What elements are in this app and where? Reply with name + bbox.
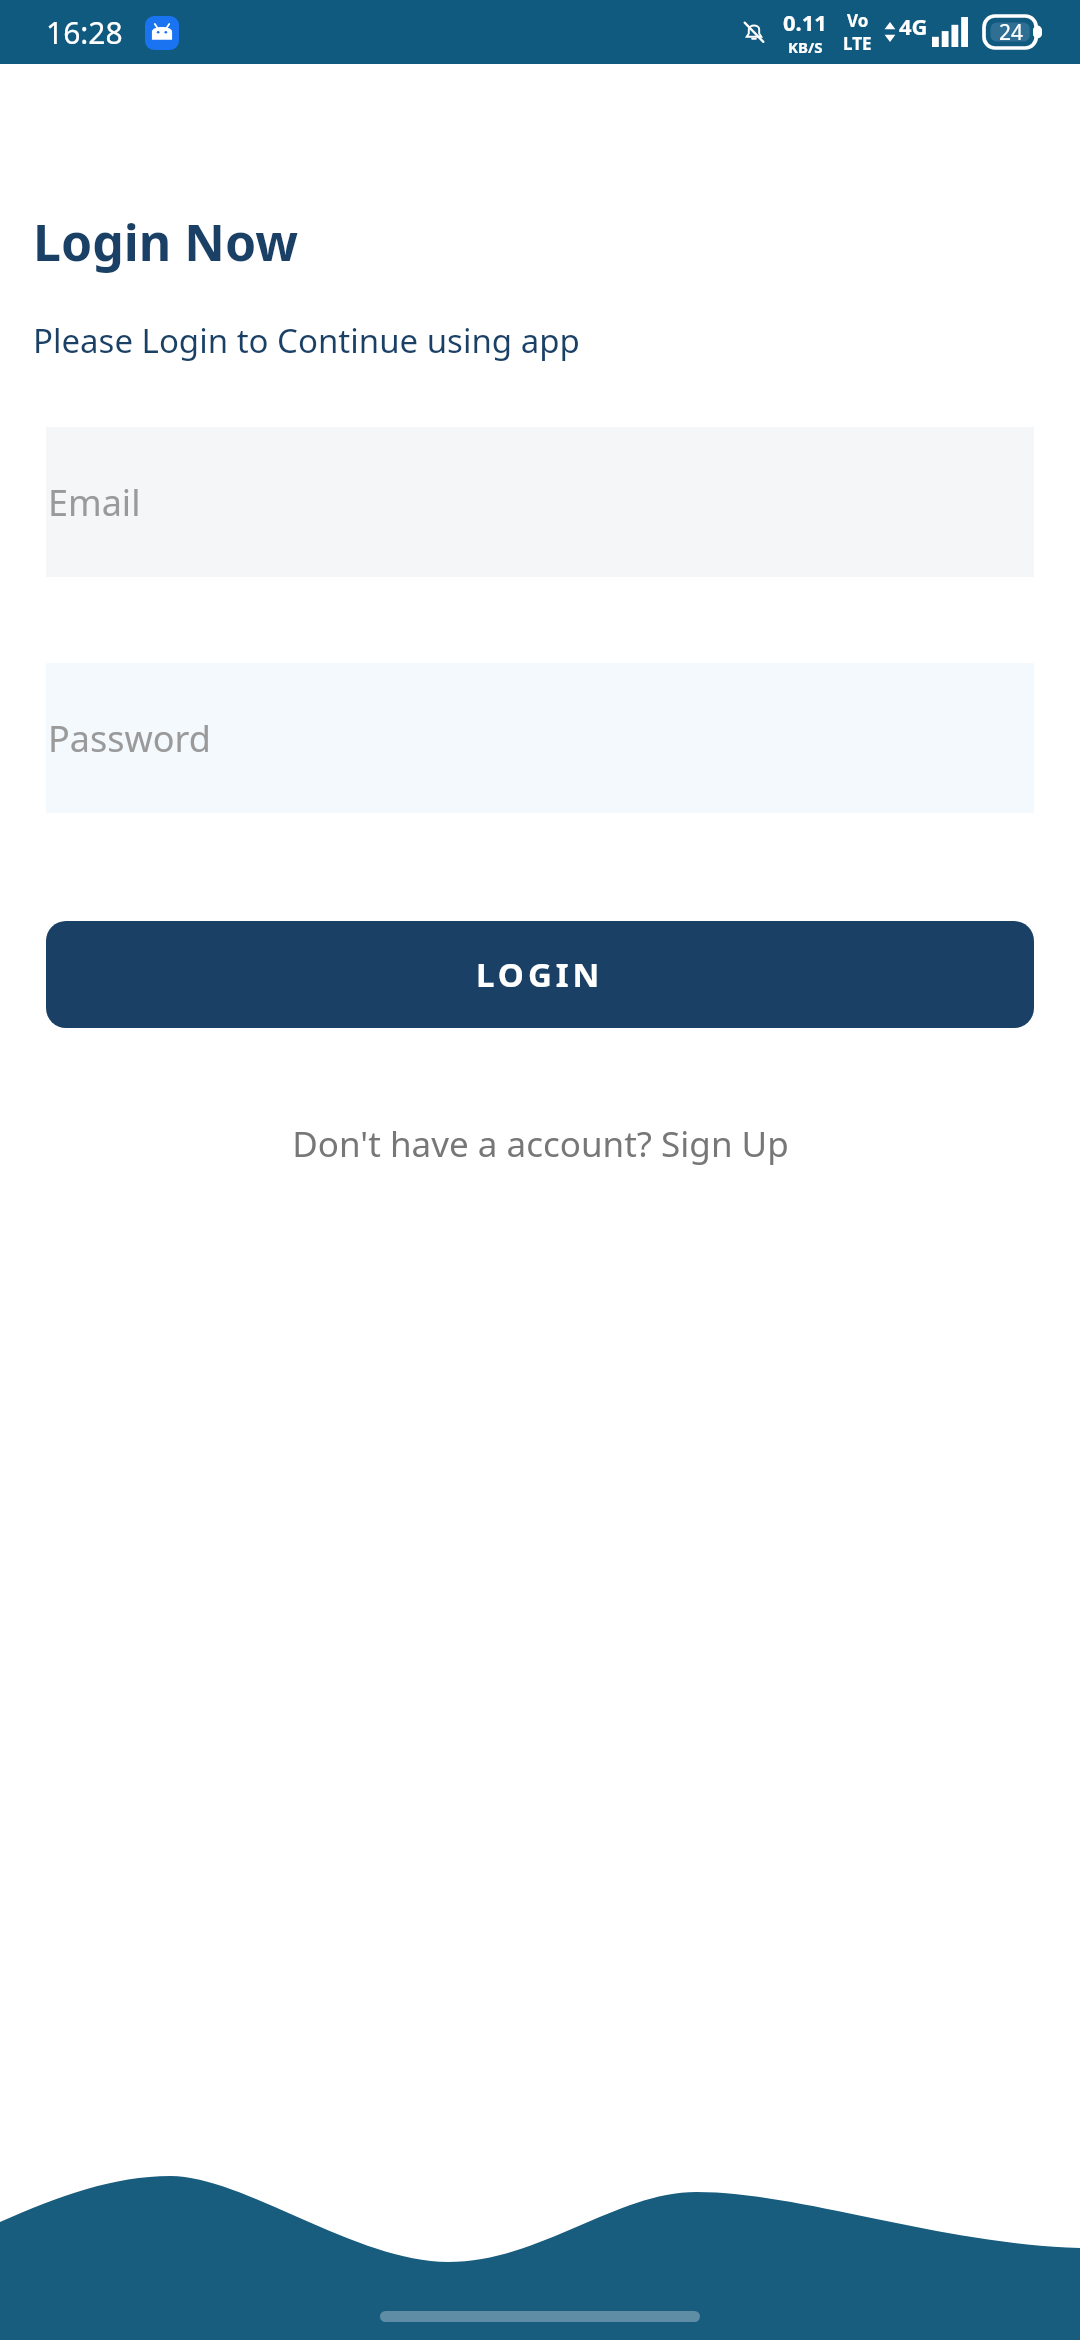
staticText: Don't have a account? Sign Up: [292, 1120, 789, 1168]
button[interactable]: Email: [46, 427, 1034, 577]
staticText: 4G: [899, 11, 928, 41]
staticText: 24: [999, 18, 1024, 47]
staticText: 16:28: [46, 12, 123, 53]
button[interactable]: LOGIN: [46, 921, 1034, 1028]
staticText: KB/S: [788, 37, 823, 57]
staticText: Please Login to Continue using app: [33, 318, 580, 363]
staticText: Vo: [847, 9, 869, 32]
staticText: Password: [48, 714, 211, 763]
staticText: LTE: [843, 32, 872, 55]
button[interactable]: Don't have a account? Sign Up: [268, 1110, 813, 1178]
staticText: Email: [48, 478, 141, 527]
button[interactable]: Password: [46, 663, 1034, 813]
staticText: Login Now: [33, 208, 298, 276]
staticText: 0.11: [783, 7, 827, 37]
staticText: LOGIN: [476, 952, 604, 997]
